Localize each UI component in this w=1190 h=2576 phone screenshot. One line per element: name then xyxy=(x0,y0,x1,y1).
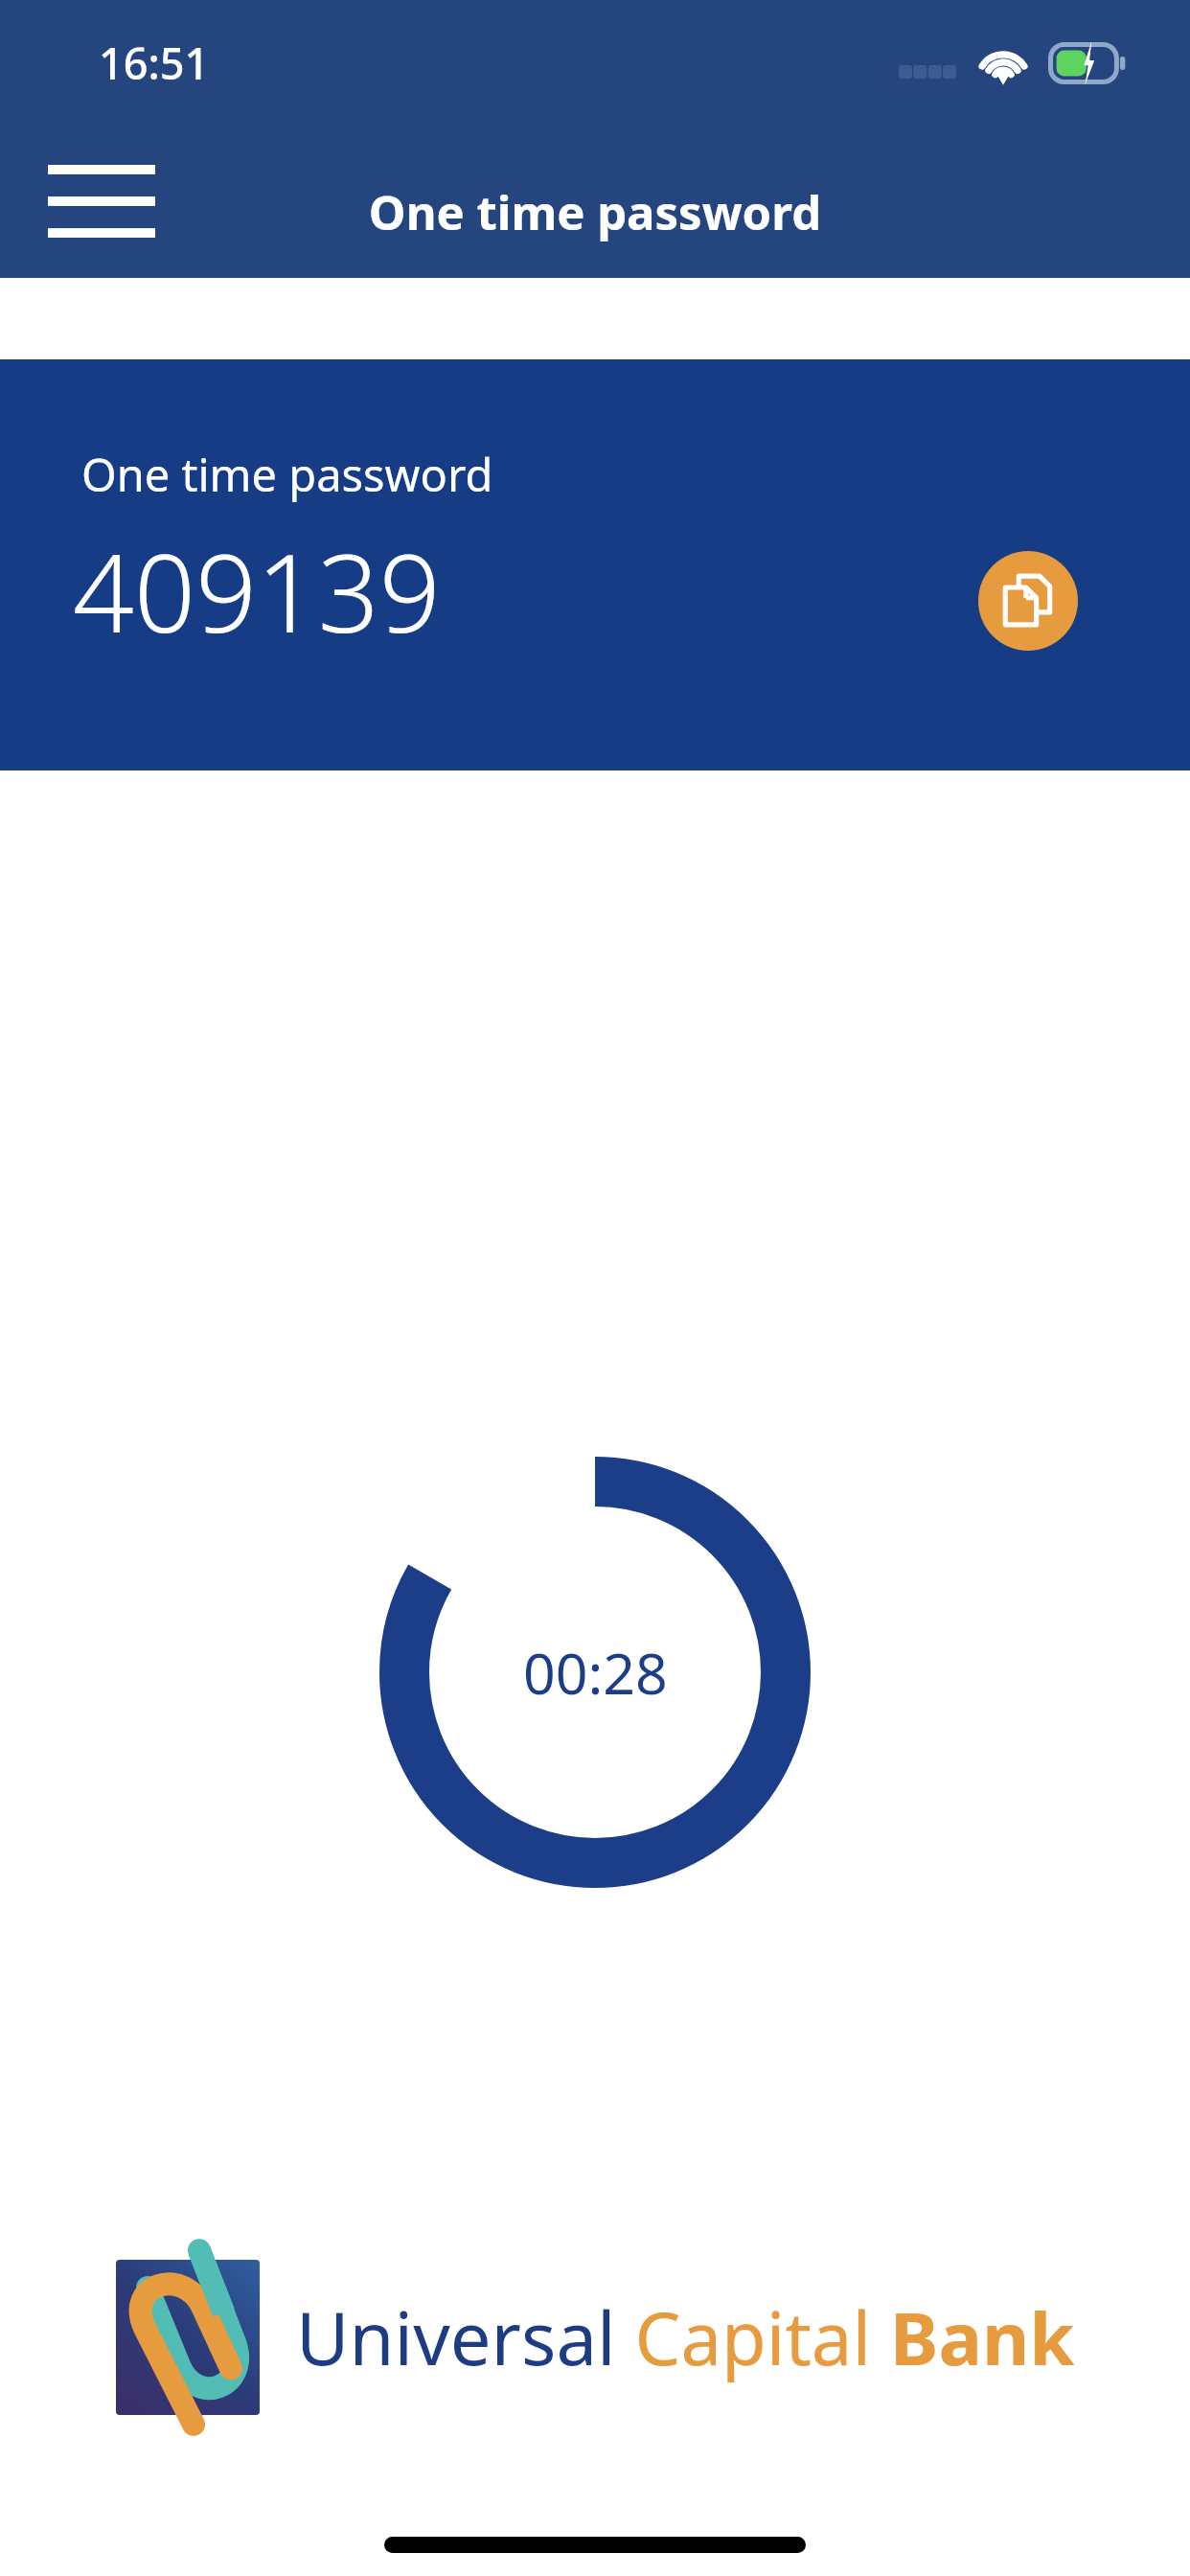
staticText: 16:51 xyxy=(99,34,210,92)
button[interactable]: Copy one time password xyxy=(978,551,1078,651)
staticText: Universal Capital Bank xyxy=(296,2288,1075,2387)
button[interactable]: One time password xyxy=(0,359,1190,770)
staticText: 409139 xyxy=(73,517,441,664)
button[interactable]: Menu xyxy=(27,144,176,259)
staticText: One time password xyxy=(81,444,493,505)
staticText: One time password xyxy=(0,180,1190,244)
staticText: 00:28 xyxy=(523,1634,668,1711)
